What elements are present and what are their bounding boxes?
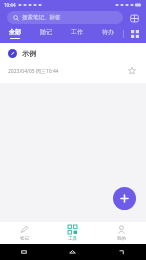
staticText: 全部 [9, 28, 21, 36]
staticText: 笔记 [20, 236, 29, 242]
button[interactable]: 示例 [0, 43, 146, 83]
button[interactable]: Scan [128, 12, 140, 24]
button[interactable]: 待办 [92, 26, 123, 41]
staticText: 10:44 [4, 2, 16, 8]
button[interactable]: 全部 [0, 26, 30, 41]
button[interactable]: Back [97, 244, 146, 260]
staticText: 我的 [117, 236, 126, 242]
staticText: 工作 [71, 28, 83, 36]
staticText: 待办 [102, 28, 114, 36]
button[interactable]: Add note [113, 187, 136, 210]
staticText: 搜索笔记、标签 [22, 14, 61, 21]
staticText: 2023/04/05 周三10:44 [8, 68, 59, 75]
button[interactable]: 工作 [61, 26, 92, 41]
staticText: 随记 [40, 28, 52, 36]
staticText: 工具 [68, 236, 77, 242]
button[interactable]: Recents [0, 244, 48, 260]
staticText: 示例 [22, 49, 36, 58]
button[interactable]: 工具 [48, 222, 97, 244]
button[interactable]: 搜索笔记、标签 [7, 11, 123, 24]
button[interactable]: 我的 [97, 222, 146, 244]
button[interactable]: Grid view [124, 26, 146, 41]
button[interactable]: 随记 [30, 26, 61, 41]
button[interactable]: Home [48, 244, 97, 260]
button[interactable]: Favourite [126, 65, 138, 77]
button[interactable]: 笔记 [0, 222, 48, 244]
